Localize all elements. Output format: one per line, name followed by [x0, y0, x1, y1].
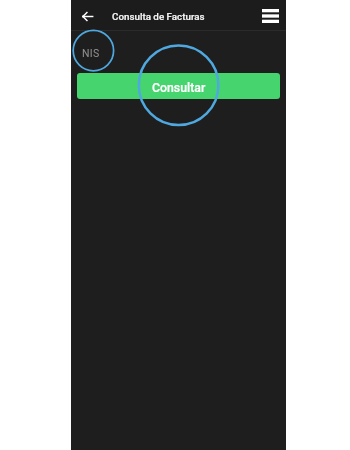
button[interactable]: Menu [255, 0, 286, 31]
staticText: NIS [82, 47, 100, 59]
staticText: Consulta de Facturas [112, 11, 205, 22]
button[interactable]: Consultar [77, 73, 280, 99]
staticText: Consultar [152, 81, 206, 95]
button[interactable]: NIS [77, 39, 177, 65]
button[interactable]: Back [74, 2, 101, 29]
